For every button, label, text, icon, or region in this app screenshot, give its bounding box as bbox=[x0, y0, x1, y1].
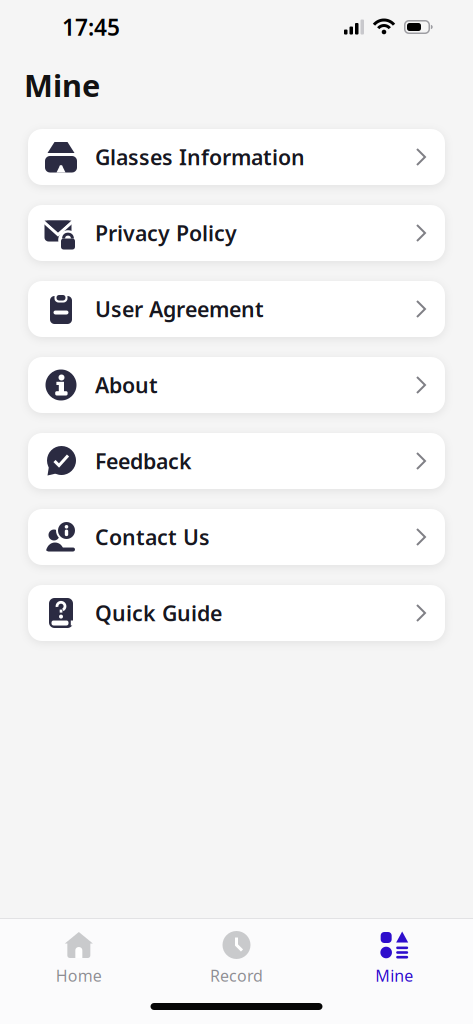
button[interactable]: Mine bbox=[315, 931, 473, 986]
button[interactable]: Record bbox=[158, 931, 315, 986]
staticText: Glasses Information bbox=[95, 143, 305, 171]
button[interactable]: Glasses Information bbox=[28, 129, 445, 185]
button[interactable]: User Agreement bbox=[28, 281, 445, 337]
staticText: Quick Guide bbox=[95, 599, 222, 627]
staticText: Record bbox=[210, 965, 263, 986]
staticText: Contact Us bbox=[95, 523, 210, 551]
button[interactable]: Quick Guide bbox=[28, 585, 445, 641]
staticText: Feedback bbox=[95, 447, 192, 475]
button[interactable]: About bbox=[28, 357, 445, 413]
button[interactable]: Feedback bbox=[28, 433, 445, 489]
staticText: User Agreement bbox=[95, 295, 264, 323]
staticText: Privacy Policy bbox=[95, 219, 237, 247]
staticText: About bbox=[95, 371, 158, 399]
staticText: Home bbox=[56, 965, 102, 986]
staticText: Mine bbox=[375, 965, 413, 986]
staticText: Mine bbox=[24, 65, 100, 105]
button[interactable]: Privacy Policy bbox=[28, 205, 445, 261]
button[interactable]: Contact Us bbox=[28, 509, 445, 565]
staticText: 17:45 bbox=[62, 12, 120, 42]
button[interactable]: Home bbox=[0, 931, 158, 986]
